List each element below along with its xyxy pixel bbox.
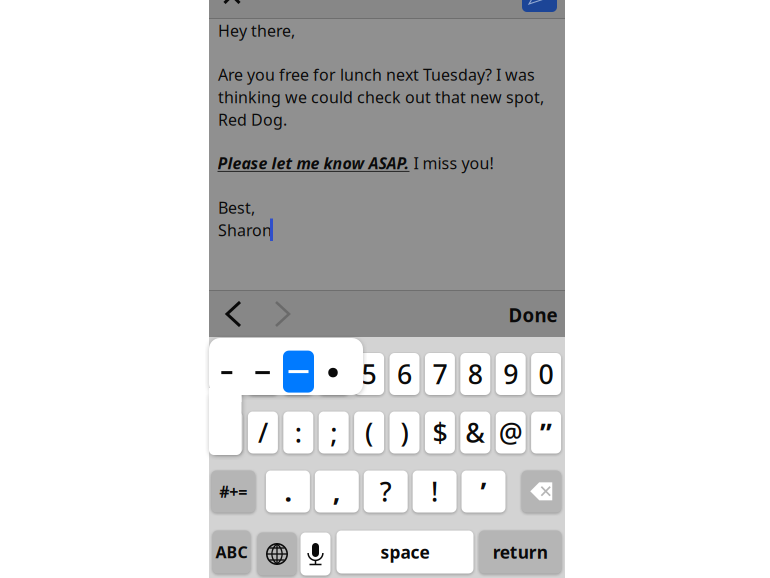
button[interactable]: #+=: [211, 470, 255, 512]
staticText: space: [380, 540, 429, 563]
staticText: !: [431, 474, 438, 509]
staticText: I miss you!: [409, 152, 493, 174]
button[interactable]: 8: [460, 353, 490, 395]
button[interactable]: Hyphen: [221, 371, 232, 374]
button[interactable]: 2: [248, 353, 278, 395]
button[interactable]: Em dash: [283, 351, 314, 393]
button[interactable]: .: [266, 470, 310, 512]
button[interactable]: 5: [354, 353, 384, 395]
staticText: 2: [255, 356, 270, 392]
staticText: ): [400, 415, 408, 450]
button[interactable]: $: [425, 411, 455, 453]
button[interactable]: ): [389, 411, 419, 453]
staticText: Sharon: [218, 219, 272, 241]
button[interactable]: Previous field: [217, 299, 253, 331]
button[interactable]: (: [354, 411, 384, 453]
button[interactable]: 4: [319, 353, 349, 395]
button[interactable]: En dash: [255, 371, 270, 374]
button[interactable]: Dictate: [300, 532, 330, 575]
button[interactable]: Bullet: [328, 368, 338, 377]
staticText: :: [295, 415, 302, 450]
staticText: Done: [508, 303, 557, 327]
button[interactable]: 0: [531, 353, 561, 395]
staticText: &: [465, 415, 485, 450]
button[interactable]: Next field: [263, 299, 299, 331]
staticText: return: [493, 540, 548, 563]
staticText: @: [499, 415, 523, 450]
button[interactable]: /: [248, 411, 278, 453]
staticText: ?: [380, 474, 392, 509]
button[interactable]: 6: [389, 353, 419, 395]
staticText: 6: [397, 356, 412, 392]
staticText: Hey there,: [218, 20, 295, 41]
button[interactable]: :: [283, 411, 313, 453]
button[interactable]: 1: [212, 353, 242, 395]
button[interactable]: !: [413, 470, 457, 512]
button[interactable]: return: [479, 530, 561, 573]
staticText: (: [365, 415, 373, 450]
staticText: 7: [432, 356, 447, 392]
staticText: 9: [503, 356, 518, 392]
staticText: 3: [291, 356, 306, 392]
staticText: $: [432, 415, 447, 450]
staticText: 4: [326, 356, 341, 392]
button[interactable]: @: [496, 411, 526, 453]
staticText: 5: [362, 356, 377, 392]
staticText: Are you free for lunch next Tuesday? I w…: [218, 64, 535, 85]
staticText: thinking we could check out that new spo…: [218, 86, 544, 108]
staticText: #+=: [219, 481, 247, 502]
button[interactable]: Next keyboard: [257, 532, 296, 575]
button[interactable]: ’: [461, 470, 505, 512]
staticText: Please let me know ASAP.: [217, 152, 409, 174]
button[interactable]: ?: [364, 470, 408, 512]
staticText: 8: [468, 356, 483, 392]
button[interactable]: 7: [425, 353, 455, 395]
button[interactable]: ,: [315, 470, 359, 512]
button[interactable]: ”: [531, 411, 561, 453]
button[interactable]: Delete: [522, 470, 561, 512]
button[interactable]: Done: [499, 300, 557, 330]
staticText: Red Dog.: [218, 109, 287, 130]
staticText: ,: [333, 474, 341, 509]
staticText: ”: [540, 415, 552, 450]
staticText: 1: [220, 356, 235, 392]
button[interactable]: 3: [283, 353, 313, 395]
button[interactable]: 9: [496, 353, 526, 395]
staticText: /: [258, 415, 268, 450]
staticText: ’: [480, 474, 486, 509]
button[interactable]: ;: [319, 411, 349, 453]
button[interactable]: -: [212, 411, 242, 453]
button[interactable]: Send: [522, 0, 557, 12]
staticText: Best,: [218, 197, 255, 218]
staticText: .: [284, 474, 291, 509]
button[interactable]: Close: [224, 0, 258, 18]
staticText: ABC: [215, 541, 247, 563]
staticText: ;: [330, 415, 337, 450]
button[interactable]: &: [460, 411, 490, 453]
button[interactable]: ABC: [212, 530, 250, 573]
button[interactable]: space: [336, 530, 473, 573]
staticText: 0: [539, 356, 554, 392]
